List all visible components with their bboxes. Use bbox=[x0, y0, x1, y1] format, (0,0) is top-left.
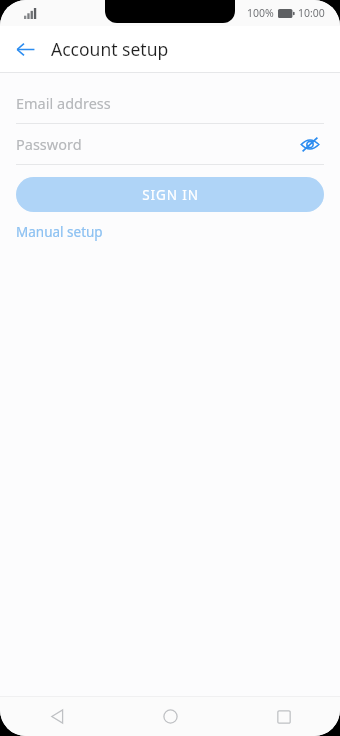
staticText: Account setup bbox=[51, 37, 169, 61]
button[interactable]: Password bbox=[0, 124, 340, 164]
staticText: Password bbox=[16, 134, 82, 154]
staticText: 10:00 bbox=[298, 6, 325, 20]
button[interactable]: Email address bbox=[0, 83, 340, 123]
staticText: Email address bbox=[16, 93, 111, 113]
button[interactable]: SIGN IN bbox=[16, 177, 324, 212]
button[interactable]: Home bbox=[114, 709, 227, 724]
button[interactable]: Recent apps bbox=[227, 710, 340, 724]
button[interactable]: Manual setup bbox=[16, 223, 103, 241]
staticText: Manual setup bbox=[16, 223, 103, 241]
staticText: 100% bbox=[247, 6, 274, 20]
button[interactable]: Show password bbox=[296, 130, 324, 158]
staticText: SIGN IN bbox=[142, 186, 199, 204]
button[interactable]: Back bbox=[0, 709, 114, 724]
button[interactable]: Back bbox=[8, 32, 42, 66]
